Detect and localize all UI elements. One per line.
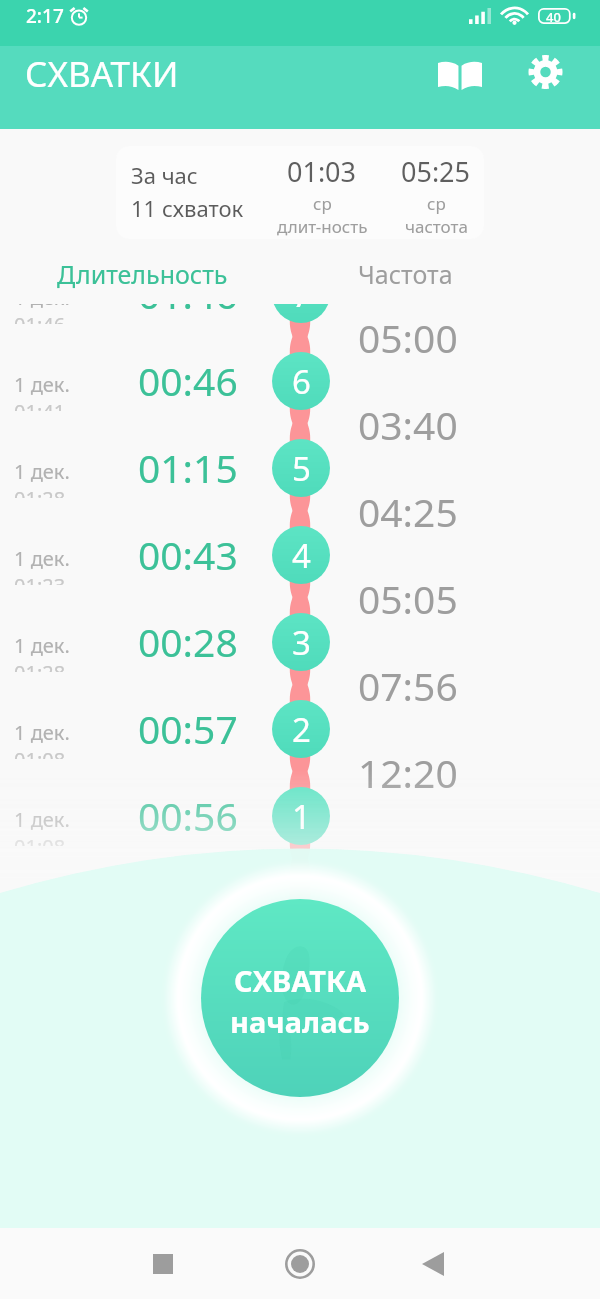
staticText: 04:25 (358, 485, 458, 538)
staticText: 00:43 (138, 528, 238, 581)
staticText: 01:41 (14, 398, 66, 411)
button[interactable]: За час (116, 146, 484, 239)
button[interactable]: 00:43 (0, 511, 600, 598)
staticText: 01:46 (138, 304, 238, 320)
staticText: 00:56 (138, 789, 238, 842)
staticText: 07:56 (358, 659, 458, 712)
staticText: 01:15 (138, 441, 238, 494)
staticText: 01:08 (14, 833, 66, 846)
staticText: 00:46 (138, 354, 238, 407)
staticText: 6 (292, 359, 311, 404)
staticText: 1 дек. (14, 304, 70, 311)
staticText: 7 (292, 304, 311, 317)
staticText: 00:57 (138, 702, 238, 755)
staticText: 2 (292, 707, 311, 752)
staticText: 03:40 (358, 398, 458, 451)
staticText: 00:28 (138, 615, 238, 668)
staticText: СХВАТКА (234, 961, 367, 1000)
staticText: 1 дек. (14, 545, 70, 572)
staticText: За час (131, 160, 198, 190)
staticText: СХВАТКИ (25, 50, 179, 98)
staticText: 05:05 (358, 572, 458, 625)
staticText: 1 дек. (14, 371, 70, 398)
button[interactable]: 00:57 (0, 685, 600, 772)
button[interactable]: Home (272, 1236, 328, 1292)
button[interactable]: Settings (517, 46, 573, 102)
staticText: 1 дек. (14, 632, 70, 659)
staticText: 01:46 (14, 311, 66, 324)
staticText: 12:20 (358, 746, 458, 799)
button[interactable]: Back (405, 1236, 461, 1292)
staticText: 01:28 (14, 485, 66, 498)
staticText: Частота (358, 257, 453, 291)
button[interactable]: Recents (135, 1236, 191, 1292)
staticText: 2:17 (26, 3, 64, 29)
staticText: Длительность (57, 257, 228, 291)
staticText: 01:28 (14, 659, 66, 672)
staticText: частота (405, 215, 468, 238)
staticText: 3 (292, 620, 311, 665)
staticText: ср (427, 192, 446, 215)
staticText: ср (313, 192, 332, 215)
staticText: началась (230, 1002, 370, 1041)
staticText: 1 дек. (14, 719, 70, 746)
staticText: 1 дек. (14, 806, 70, 833)
staticText: длит-ность (277, 215, 368, 238)
staticText: 05:25 (401, 153, 471, 190)
staticText: 4 (292, 533, 311, 578)
button[interactable]: 00:46 (0, 337, 600, 424)
button[interactable]: Guide (432, 46, 488, 102)
staticText: 01:03 (287, 153, 357, 190)
button[interactable]: 01:15 (0, 424, 600, 511)
staticText: 40 (546, 8, 561, 24)
staticText: 01:08 (14, 746, 66, 759)
staticText: 11 схваток (131, 193, 244, 223)
staticText: 1 дек. (14, 458, 70, 485)
button[interactable]: 01:46 (0, 304, 600, 337)
button[interactable]: 00:28 (0, 598, 600, 685)
staticText: 1 (292, 794, 311, 839)
staticText: 01:23 (14, 572, 66, 585)
button[interactable]: 00:56 (0, 772, 600, 859)
staticText: 05:00 (358, 311, 458, 364)
button[interactable]: СХВАТКА (201, 899, 399, 1097)
staticText: 5 (292, 446, 311, 491)
